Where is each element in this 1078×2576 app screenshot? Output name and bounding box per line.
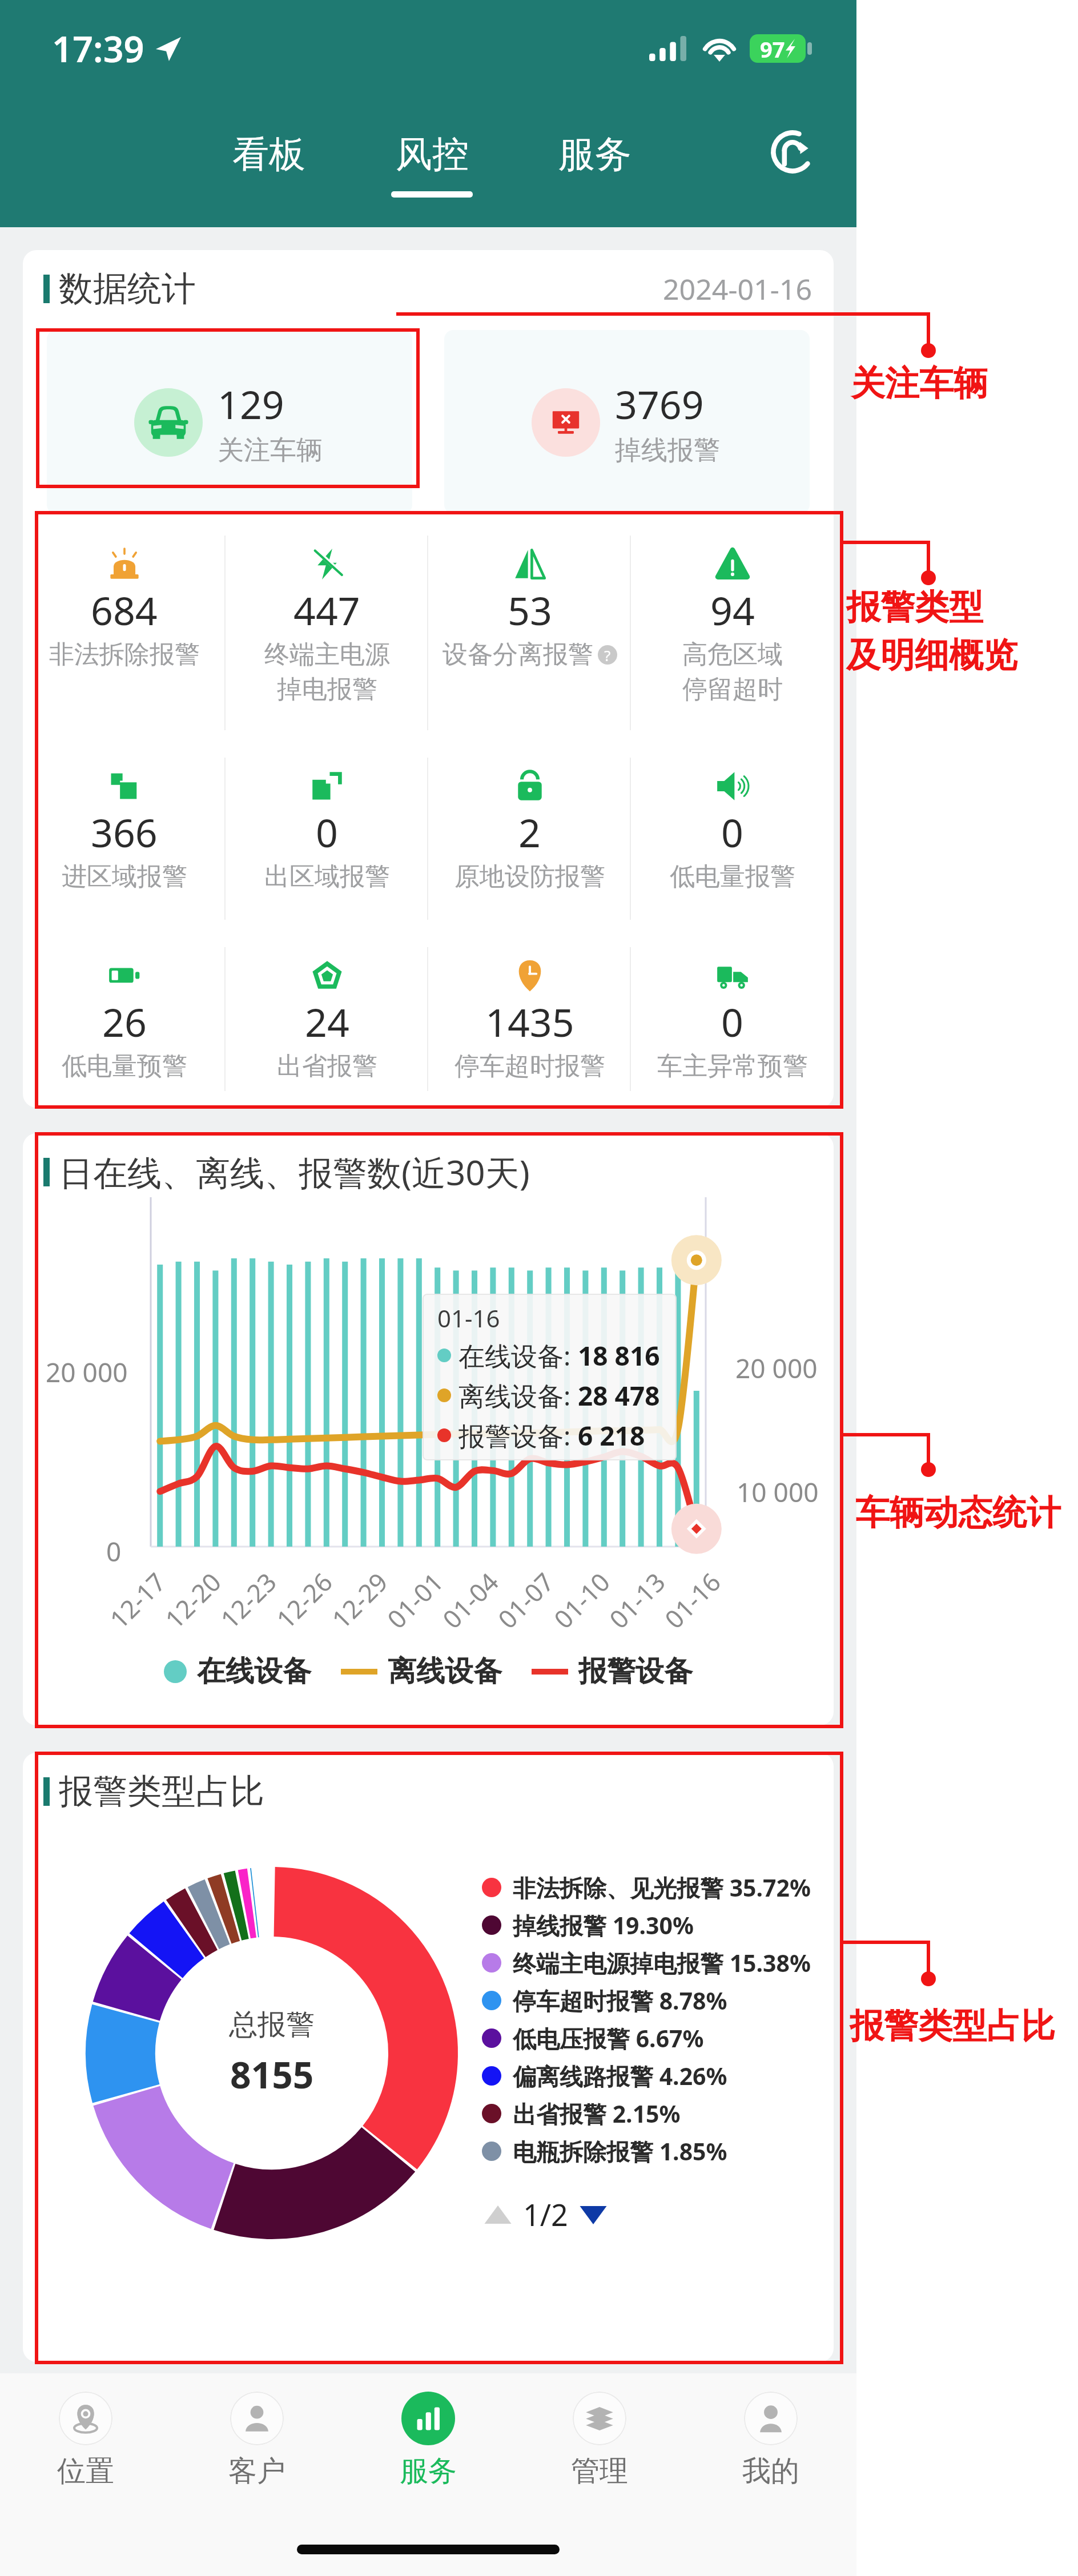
staticText: 关注车辆 (851, 362, 988, 405)
button[interactable]: 2 (428, 748, 631, 938)
staticText: 出省报警 (277, 1050, 377, 1082)
button[interactable]: Next page (577, 2199, 609, 2231)
button[interactable]: 53 (428, 526, 631, 748)
staticText: 停留超时 (682, 674, 783, 705)
button[interactable]: 电瓶拆除报警 1.85% (482, 2132, 727, 2170)
button[interactable]: 0 (631, 748, 834, 938)
button[interactable]: 风控 (388, 96, 476, 198)
staticText: 掉线报警 19.30% (513, 1909, 694, 1941)
staticText: 掉线报警 (615, 434, 720, 467)
button[interactable]: 客户 (171, 2373, 343, 2516)
button[interactable]: 26 (23, 938, 226, 1108)
staticText: 报警类型 及明细概览 (846, 586, 1017, 677)
staticText: 366 (91, 806, 158, 859)
staticText: 客户 (228, 2453, 285, 2489)
staticText: 12-20 (157, 1565, 228, 1636)
staticText: 报警设备: (458, 1418, 578, 1454)
staticText: 0 (106, 1533, 122, 1569)
staticText: 风控 (396, 131, 469, 178)
button[interactable]: 服务 (343, 2373, 514, 2516)
staticText: 报警类型占比 (850, 2005, 1055, 2048)
staticText: 我的 (742, 2453, 799, 2489)
button[interactable]: 1435 (428, 938, 631, 1108)
staticText: 车主异常预警 (657, 1050, 808, 1082)
staticText: 低电量预警 (62, 1050, 187, 1082)
staticText: 低电量报警 (670, 861, 795, 892)
staticText: 3769 (615, 377, 704, 430)
button[interactable]: 0 (226, 748, 428, 938)
staticText: 10 000 (737, 1474, 819, 1510)
staticText: 684 (91, 583, 158, 637)
button[interactable]: Refresh (764, 123, 821, 180)
staticText: 0 (721, 806, 743, 859)
button[interactable]: 服务 (555, 96, 635, 191)
button[interactable]: 出省报警 2.15% (482, 2095, 681, 2132)
button[interactable]: 停车超时报警 8.78% (482, 1982, 727, 2019)
staticText: 原地设防报警 (454, 861, 605, 892)
staticText: 停车超时报警 8.78% (513, 1985, 727, 2016)
staticText: 129 (218, 377, 284, 430)
staticText: 停车超时报警 (454, 1050, 605, 1082)
staticText: 偏离线路报警 4.26% (513, 2060, 727, 2092)
staticText: 28 478 (578, 1378, 660, 1414)
button[interactable]: 366 (23, 748, 226, 938)
staticText: ? (604, 645, 611, 665)
button[interactable]: 终端主电源掉电报警 15.38% (482, 1944, 811, 1982)
button[interactable]: 掉线报警 19.30% (482, 1906, 694, 1944)
button[interactable]: 447 (226, 526, 428, 748)
staticText: 非法拆除、见光报警 35.72% (513, 1871, 811, 1903)
staticText: 数据统计 (59, 267, 196, 311)
button[interactable]: 低电压报警 6.67% (482, 2019, 704, 2057)
staticText: 20 000 (46, 1354, 128, 1390)
button[interactable]: Previous page (482, 2199, 514, 2231)
staticText: 进区域报警 (62, 861, 187, 892)
staticText: 管理 (571, 2453, 628, 2489)
staticText: 高危区域 (682, 639, 783, 670)
staticText: 2 (518, 806, 541, 859)
button[interactable]: 看板 (229, 96, 309, 191)
button[interactable]: 管理 (514, 2373, 685, 2516)
staticText: 01-13 (602, 1565, 672, 1636)
button[interactable]: 0 (631, 938, 834, 1108)
staticText: 18 816 (578, 1338, 660, 1374)
staticText: 94 (710, 583, 755, 637)
staticText: 设备分离报警 (443, 639, 593, 670)
button[interactable]: 684 (23, 526, 226, 748)
staticText: 0 (721, 995, 743, 1048)
staticText: 掉电报警 (277, 674, 377, 705)
button[interactable]: 94 (631, 526, 834, 748)
staticText: 12-26 (269, 1565, 339, 1636)
staticText: 17:39 (52, 24, 144, 73)
staticText: 01-01 (379, 1565, 450, 1636)
button[interactable]: 129 (47, 330, 412, 514)
staticText: 01-16 (437, 1302, 500, 1334)
staticText: 非法拆除报警 (49, 639, 200, 670)
staticText: 447 (293, 583, 360, 637)
staticText: 终端主电源 (264, 639, 390, 670)
button[interactable]: 3769 (444, 330, 810, 514)
staticText: 0 (316, 806, 338, 859)
button[interactable]: 位置 (0, 2373, 171, 2516)
staticText: 终端主电源掉电报警 15.38% (513, 1947, 811, 1979)
staticText: 在线设备: (458, 1338, 578, 1374)
staticText: 报警设备 (578, 1653, 693, 1689)
staticText: 97 (760, 34, 785, 63)
staticText: 01-10 (546, 1565, 617, 1636)
button[interactable]: 非法拆除、见光报警 35.72% (482, 1869, 811, 1906)
staticText: 车辆动态统计 (855, 1491, 1061, 1535)
staticText: 电瓶拆除报警 1.85% (513, 2135, 727, 2167)
staticText: 8155 (230, 2050, 314, 2099)
staticText: 离线设备: (458, 1378, 578, 1414)
staticText: 低电压报警 6.67% (513, 2022, 704, 2054)
staticText: 关注车辆 (218, 434, 323, 467)
button[interactable]: 24 (226, 938, 428, 1108)
staticText: 24 (305, 995, 349, 1048)
staticText: 位置 (57, 2453, 114, 2489)
staticText: 53 (508, 583, 552, 637)
button[interactable]: 偏离线路报警 4.26% (482, 2057, 727, 2095)
staticText: 报警类型占比 (59, 1770, 264, 1813)
staticText: 1435 (485, 995, 574, 1048)
staticText: 26 (102, 995, 147, 1048)
staticText: 01-04 (435, 1565, 505, 1636)
button[interactable]: 我的 (685, 2373, 856, 2516)
